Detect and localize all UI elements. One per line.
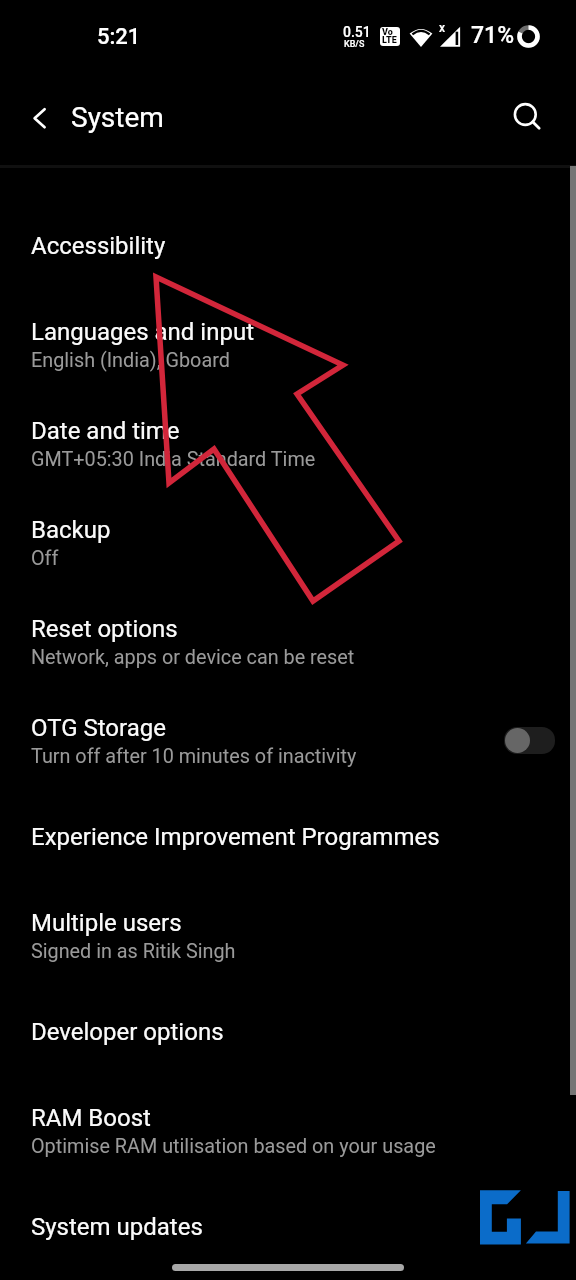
staticText: Languages and input <box>31 318 254 346</box>
button[interactable]: Reset options <box>0 591 576 690</box>
staticText: Network, apps or device can be reset <box>31 646 355 669</box>
staticText: 5:21 <box>97 24 141 50</box>
staticText: Date and time <box>31 417 180 445</box>
staticText: 0.51 <box>343 24 371 40</box>
button[interactable]: Backup <box>0 492 576 591</box>
staticText: Backup <box>31 516 111 544</box>
staticText: Optimise RAM utilisation based on your u… <box>31 1135 436 1158</box>
staticText: Turn off after 10 minutes of inactivity <box>31 745 357 768</box>
staticText: English (India), Gboard <box>31 349 230 372</box>
button[interactable]: Search <box>499 92 551 144</box>
staticText: Experience Improvement Programmes <box>31 823 440 851</box>
button[interactable]: Experience Improvement Programmes <box>0 789 576 885</box>
staticText: Reset options <box>31 615 178 643</box>
staticText: Developer options <box>31 1018 224 1046</box>
button[interactable]: Accessibility <box>0 198 576 294</box>
staticText: Accessibility <box>31 232 166 260</box>
staticText: System <box>71 101 164 134</box>
staticText: Off <box>31 547 59 570</box>
button[interactable]: Languages and input <box>0 294 576 393</box>
staticText: LTE <box>382 35 397 46</box>
staticText: RAM Boost <box>31 1104 151 1132</box>
staticText: Signed in as Ritik Singh <box>31 940 236 963</box>
staticText: OTG Storage <box>31 714 166 742</box>
staticText: 71% <box>471 22 515 49</box>
staticText: x <box>439 21 446 35</box>
button[interactable]: Multiple users <box>0 885 576 984</box>
staticText: Vo <box>382 27 393 38</box>
button[interactable]: Date and time <box>0 393 576 492</box>
button[interactable]: RAM Boost <box>0 1080 576 1179</box>
staticText: System updates <box>31 1213 203 1241</box>
staticText: GMT+05:30 India Standard Time <box>31 448 316 471</box>
button[interactable]: System updates <box>0 1179 576 1275</box>
button[interactable]: OTG Storage <box>0 690 576 789</box>
button[interactable]: Toggle OTG Storage <box>504 727 555 754</box>
button[interactable]: Developer options <box>0 984 576 1080</box>
staticText: KB/S <box>344 39 365 50</box>
staticText: Multiple users <box>31 909 182 937</box>
button[interactable]: Navigate up <box>14 92 66 144</box>
